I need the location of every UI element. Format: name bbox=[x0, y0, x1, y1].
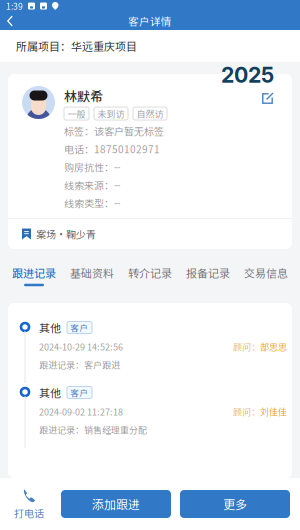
staticText: 自然访 bbox=[136, 107, 163, 120]
staticText: 跟进记录 bbox=[12, 265, 56, 281]
staticText: 标签：该客户暂无标签 bbox=[64, 124, 164, 138]
staticText: 案场·鞠少青 bbox=[36, 227, 96, 241]
staticText: 跟进记录：销售经理重分配 bbox=[39, 423, 147, 436]
staticText: 购房抗性：-- bbox=[64, 160, 120, 174]
button[interactable]: 打电话 bbox=[6, 483, 52, 525]
staticText: 客户详情 bbox=[128, 13, 172, 29]
staticText: 线索来源：-- bbox=[64, 178, 120, 192]
staticText: 报备记录 bbox=[186, 265, 230, 281]
staticText: 添加跟进 bbox=[92, 495, 140, 513]
staticText: 所属项目：华远重庆项目 bbox=[16, 38, 137, 54]
staticText: 打电话 bbox=[14, 506, 44, 520]
staticText: 一般 bbox=[67, 107, 85, 120]
staticText: 2024-10-29 14:52:56 bbox=[39, 340, 123, 353]
staticText: 交易信息 bbox=[244, 265, 288, 281]
button[interactable]: 转介记录 bbox=[121, 249, 179, 303]
staticText: 跟进记录：客户跟进 bbox=[39, 358, 120, 371]
staticText: 客户 bbox=[70, 386, 88, 399]
button[interactable]: 跟进记录 bbox=[5, 249, 63, 303]
button[interactable]: 交易信息 bbox=[237, 249, 295, 303]
staticText: 顾问： bbox=[233, 340, 260, 353]
staticText: 其他 bbox=[39, 384, 61, 400]
button[interactable]: 更多 bbox=[180, 490, 290, 518]
button[interactable]: 报备记录 bbox=[179, 249, 237, 303]
staticText: 1:39 bbox=[6, 0, 23, 12]
staticText: 2024-09-02 11:27:18 bbox=[39, 405, 123, 418]
button[interactable]: 基础资料 bbox=[63, 249, 121, 303]
staticText: 客户 bbox=[70, 321, 88, 334]
staticText: 郜思思 bbox=[260, 340, 287, 353]
staticText: 未到访 bbox=[97, 107, 124, 120]
staticText: 更多 bbox=[223, 495, 247, 513]
staticText: 其他 bbox=[39, 319, 61, 335]
staticText: 林默希 bbox=[64, 86, 103, 105]
staticText: 线索类型：-- bbox=[64, 196, 120, 210]
button[interactable]: Edit bbox=[254, 85, 281, 112]
staticText: 电话：18750102971 bbox=[64, 142, 160, 156]
staticText: 刘佳佳 bbox=[260, 405, 287, 418]
staticText: 基础资料 bbox=[70, 265, 114, 281]
staticText: 2025 bbox=[221, 62, 274, 88]
button[interactable]: 添加跟进 bbox=[61, 490, 171, 518]
button[interactable]: Back bbox=[0, 12, 25, 30]
staticText: 顾问： bbox=[233, 405, 260, 418]
staticText: 转介记录 bbox=[128, 265, 172, 281]
